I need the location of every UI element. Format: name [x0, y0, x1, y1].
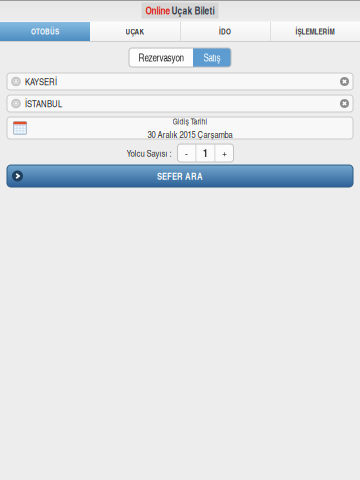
- button[interactable]: -: [177, 144, 195, 162]
- staticText: Yolcu Sayısı :: [126, 147, 171, 159]
- button[interactable]: OTOBÜS: [0, 21, 90, 42]
- staticText: KAYSERİ: [25, 75, 57, 88]
- button[interactable]: Satış: [193, 48, 231, 67]
- staticText: 30 Aralık 2015 Çarşamba: [147, 128, 232, 141]
- staticText: -: [185, 146, 188, 160]
- button[interactable]: İDO: [180, 21, 270, 42]
- staticText: UÇAK: [125, 26, 144, 37]
- staticText: 1: [203, 145, 208, 161]
- button[interactable]: KAYSERİ: [7, 73, 353, 90]
- staticText: İDO: [219, 26, 231, 37]
- staticText: SEFER ARA: [157, 169, 203, 183]
- staticText: Rezervasyon: [138, 51, 183, 64]
- staticText: Online: [145, 3, 170, 18]
- button[interactable]: SEFER ARA: [7, 165, 353, 187]
- staticText: Uçak Bileti: [171, 3, 214, 18]
- button[interactable]: 1: [196, 144, 214, 162]
- button[interactable]: +: [215, 144, 233, 162]
- button[interactable]: İŞLEMLERİM: [270, 21, 360, 42]
- staticText: Gidiş Tarihi: [172, 115, 207, 127]
- staticText: İSTANBUL: [25, 97, 62, 110]
- staticText: İŞLEMLERİM: [295, 26, 334, 37]
- button[interactable]: İSTANBUL: [7, 95, 353, 112]
- staticText: Satış: [203, 51, 220, 64]
- button[interactable]: Gidiş Tarihi: [7, 117, 353, 139]
- staticText: OTOBÜS: [31, 26, 59, 37]
- button[interactable]: Rezervasyon: [129, 48, 193, 67]
- button[interactable]: UÇAK: [90, 21, 180, 42]
- staticText: +: [222, 146, 227, 160]
